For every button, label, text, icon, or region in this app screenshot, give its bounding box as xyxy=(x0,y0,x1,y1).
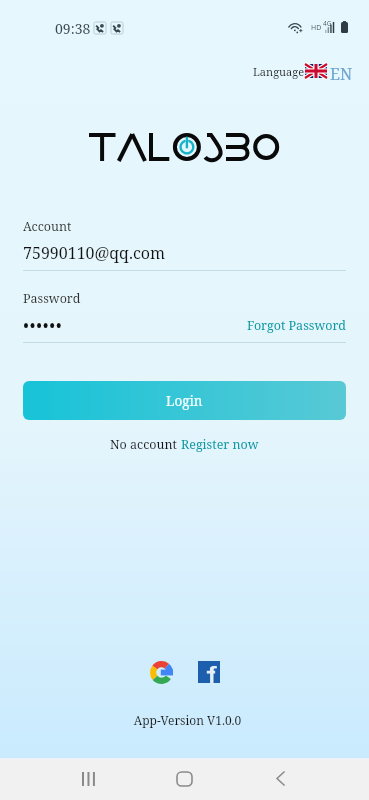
button[interactable]: Back xyxy=(258,758,302,799)
staticText: Login xyxy=(166,392,203,410)
button[interactable]: Register now xyxy=(181,436,259,453)
staticText: 4G xyxy=(323,19,332,28)
button[interactable]: Language ： xyxy=(248,58,364,84)
staticText: Language ： xyxy=(253,64,318,79)
button[interactable]: 75990110@qq.com xyxy=(23,242,166,264)
staticText: EN xyxy=(330,63,353,85)
button[interactable]: Home xyxy=(162,758,206,799)
staticText: Password xyxy=(23,290,81,307)
staticText: 09:38 xyxy=(55,19,91,38)
button[interactable]: Sign in with Google xyxy=(145,656,177,688)
staticText: App-Version V1.0.0 xyxy=(3,712,369,728)
staticText: HD xyxy=(311,23,322,33)
staticText: No account xyxy=(110,436,181,453)
button[interactable]: Sign in with Facebook xyxy=(193,656,225,688)
button[interactable]: Login xyxy=(23,381,346,420)
button[interactable]: Forgot Password xyxy=(247,317,346,334)
staticText: Account xyxy=(23,218,72,235)
button[interactable]: Recent apps xyxy=(66,758,110,799)
